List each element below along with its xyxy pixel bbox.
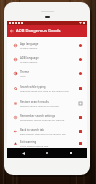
button[interactable]: ADB language	[7, 52, 87, 66]
staticText: App language	[20, 42, 39, 46]
button[interactable]: Theme	[7, 66, 87, 80]
staticText: Exit warning	[20, 140, 37, 144]
button[interactable]: Remember search settings	[7, 110, 87, 124]
button[interactable]: Search while typing	[7, 80, 87, 96]
staticText: ADB language	[20, 56, 39, 60]
button[interactable]: Home	[39, 148, 55, 158]
staticText: Remember search settings on startup	[20, 118, 65, 121]
staticText: Back button switches to the launch tab	[20, 132, 66, 135]
button[interactable]: Restore search results	[7, 96, 87, 110]
staticText: Restore search results on startup	[20, 104, 59, 107]
staticText: Auto	[20, 74, 26, 77]
staticText: System default	[20, 60, 38, 63]
staticText: Restore search results	[20, 100, 49, 104]
button[interactable]: Recent apps	[63, 148, 79, 158]
staticText: Search while typing	[20, 85, 46, 89]
staticText: ADB Dangerous Goods	[16, 28, 61, 34]
staticText: Searches while you type in the search bo…	[20, 89, 69, 92]
button[interactable]: App language	[7, 38, 87, 52]
staticText: Remember search settings	[20, 114, 56, 118]
button[interactable]: Back	[15, 148, 31, 158]
button[interactable]: Navigate up	[7, 25, 16, 37]
staticText: System default	[20, 46, 38, 49]
staticText: Theme	[20, 70, 30, 74]
button[interactable]: Back to search tab	[7, 124, 87, 138]
staticText: Back to search tab	[20, 128, 45, 132]
staticText: Warn before exiting app	[20, 144, 49, 147]
button[interactable]: Exit warning	[7, 138, 87, 148]
